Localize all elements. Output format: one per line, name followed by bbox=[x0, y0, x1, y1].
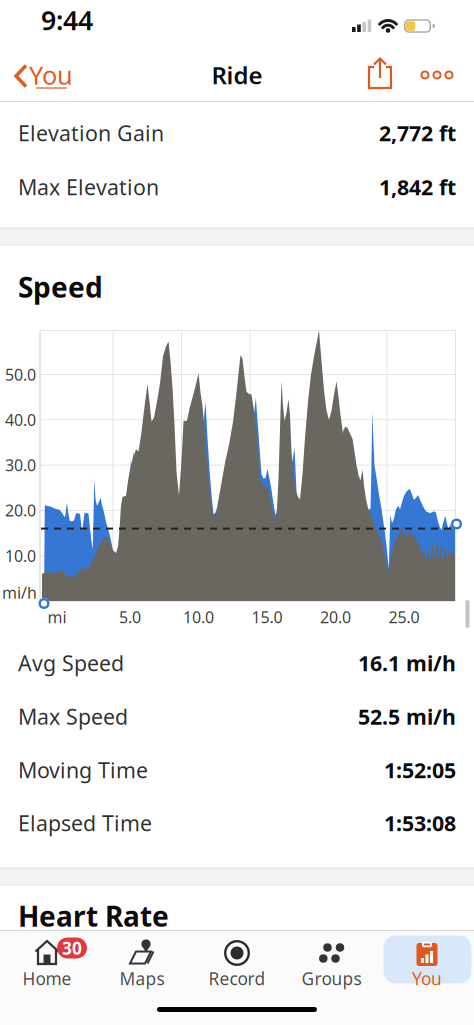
staticText: 25.0 bbox=[388, 606, 419, 628]
staticText: 30.0 bbox=[5, 454, 36, 476]
button[interactable]: More options bbox=[415, 53, 459, 97]
staticText: 1:52:05 bbox=[384, 756, 456, 784]
staticText: Groups bbox=[301, 967, 361, 990]
staticText: mi/h bbox=[2, 582, 37, 603]
staticText: 1,842 ft bbox=[379, 173, 456, 201]
staticText: Elapsed Time bbox=[18, 809, 152, 837]
button[interactable]: Record bbox=[192, 931, 282, 991]
button[interactable]: Maps bbox=[97, 931, 187, 991]
staticText: Elevation Gain bbox=[18, 119, 164, 147]
button[interactable]: Back bbox=[0, 46, 78, 102]
staticText: 10.0 bbox=[5, 545, 36, 566]
staticText: 20.0 bbox=[5, 500, 36, 521]
staticText: mi bbox=[47, 606, 66, 628]
staticText: Maps bbox=[119, 967, 164, 990]
button[interactable]: Share bbox=[358, 46, 402, 102]
staticText: 5.0 bbox=[119, 606, 141, 628]
staticText: You bbox=[412, 967, 442, 990]
staticText: 9:44 bbox=[41, 2, 93, 38]
staticText: 16.1 mi/h bbox=[358, 649, 456, 677]
staticText: Home bbox=[22, 967, 71, 990]
staticText: 10.0 bbox=[183, 606, 214, 628]
button[interactable]: You bbox=[382, 931, 472, 991]
staticText: 30 bbox=[62, 936, 82, 959]
staticText: 2,772 ft bbox=[379, 119, 456, 147]
staticText: Record bbox=[208, 967, 265, 990]
staticText: 40.0 bbox=[5, 409, 36, 430]
staticText: 52.5 mi/h bbox=[358, 702, 456, 731]
staticText: Heart Rate bbox=[18, 897, 169, 935]
staticText: 1:53:08 bbox=[384, 809, 456, 837]
staticText: Max Elevation bbox=[18, 173, 159, 201]
button[interactable]: Groups bbox=[286, 931, 376, 991]
button[interactable]: Home bbox=[2, 931, 92, 991]
staticText: You bbox=[29, 58, 73, 92]
staticText: 20.0 bbox=[320, 606, 351, 628]
staticText: Max Speed bbox=[18, 702, 128, 731]
staticText: Ride bbox=[211, 59, 262, 91]
staticText: Speed bbox=[18, 268, 103, 306]
staticText: 15.0 bbox=[251, 606, 282, 628]
staticText: Avg Speed bbox=[18, 649, 124, 677]
staticText: 50.0 bbox=[5, 364, 36, 385]
staticText: Moving Time bbox=[18, 756, 148, 784]
